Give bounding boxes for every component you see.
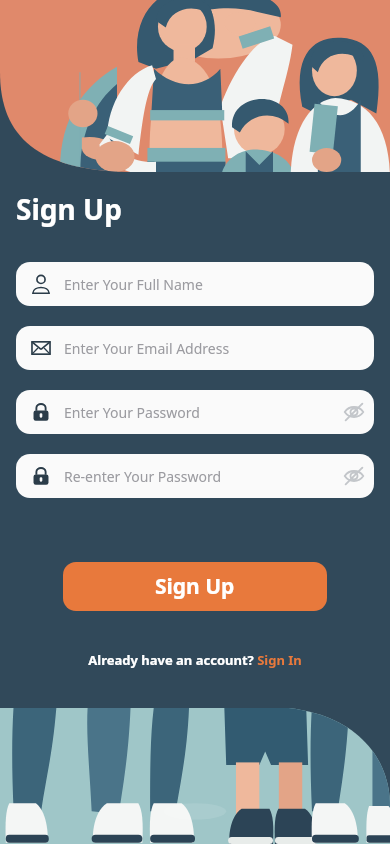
button[interactable]: Re-enter Your Password xyxy=(16,454,374,498)
staticText: Sign Up xyxy=(155,572,235,601)
staticText: Already have an account? Sign In xyxy=(88,651,302,669)
button[interactable]: Show password xyxy=(334,392,374,432)
staticText: Enter Your Email Address xyxy=(64,339,230,358)
staticText: Enter Your Password xyxy=(64,403,200,422)
staticText: Re-enter Your Password xyxy=(64,467,222,486)
button[interactable]: Enter Your Full Name xyxy=(16,262,374,306)
button[interactable]: Sign Up xyxy=(63,562,327,611)
button[interactable]: Already have an account? Sign In xyxy=(0,651,390,669)
button[interactable]: Enter Your Email Address xyxy=(16,326,374,370)
button[interactable]: Enter Your Password xyxy=(16,390,374,434)
staticText: Enter Your Full Name xyxy=(64,275,203,294)
button[interactable]: Show password xyxy=(334,456,374,496)
staticText: Sign Up xyxy=(16,190,122,228)
